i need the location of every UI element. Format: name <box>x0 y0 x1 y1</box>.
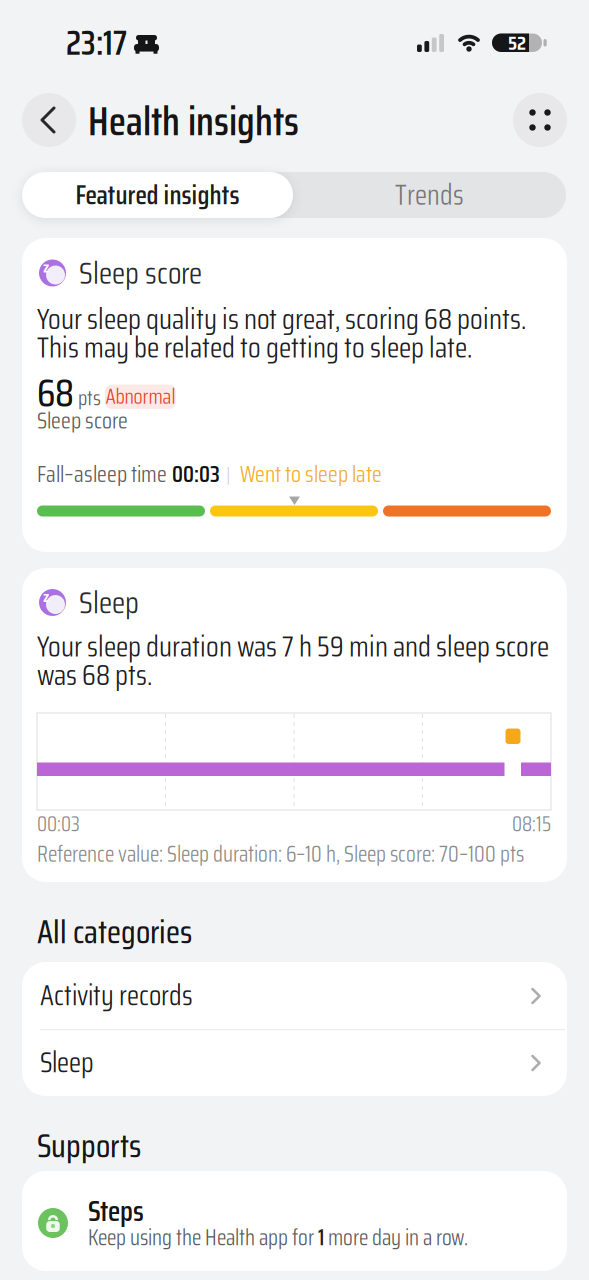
staticText: 1 <box>318 1220 324 1255</box>
staticText: z <box>43 254 49 280</box>
staticText: Health insights <box>88 90 299 152</box>
button[interactable]: Sleep <box>22 1029 567 1096</box>
button[interactable]: Activity records <box>22 962 567 1029</box>
button[interactable]: More options <box>513 93 567 147</box>
staticText: Your sleep quality is not great, scoring… <box>37 296 526 341</box>
staticText: pts <box>78 382 101 414</box>
staticText: Sleep score <box>79 249 202 297</box>
staticText: Went to sleep late <box>240 456 382 492</box>
staticText: z <box>43 584 49 609</box>
staticText: Sleep <box>40 1040 94 1085</box>
staticText: Fall–asleep time <box>37 456 167 492</box>
staticText: | <box>226 458 230 490</box>
button[interactable]: Steps <box>22 1171 567 1271</box>
staticText: more day in a row. <box>324 1220 468 1255</box>
staticText: was 68 pts. <box>37 652 152 697</box>
staticText: 00:03 <box>172 456 220 492</box>
staticText: 00:03 <box>37 808 80 840</box>
staticText: This may be related to getting to sleep … <box>37 325 472 370</box>
staticText: Supports <box>37 1120 141 1172</box>
button[interactable]: Featured insights <box>22 172 293 218</box>
staticText: All categories <box>37 906 192 958</box>
staticText: Steps <box>88 1188 144 1233</box>
staticText: 68 <box>37 363 74 423</box>
staticText: Abnormal <box>105 380 175 413</box>
staticText: Your sleep duration was 7 h 59 min and s… <box>37 624 549 669</box>
button[interactable]: Trends <box>293 172 566 218</box>
staticText: Keep using the Health app for <box>88 1220 318 1255</box>
staticText: 52 <box>508 27 526 58</box>
staticText: Reference value: Sleep duration: 6–10 h,… <box>37 837 524 871</box>
staticText: 08:15 <box>512 808 551 840</box>
staticText: Sleep score <box>37 403 128 438</box>
staticText: Featured insights <box>75 174 239 216</box>
staticText: Trends <box>395 173 464 217</box>
staticText: Activity records <box>40 973 193 1018</box>
button[interactable]: Back <box>22 93 76 147</box>
staticText: 23:17 <box>66 16 127 70</box>
staticText: Sleep <box>79 578 139 627</box>
